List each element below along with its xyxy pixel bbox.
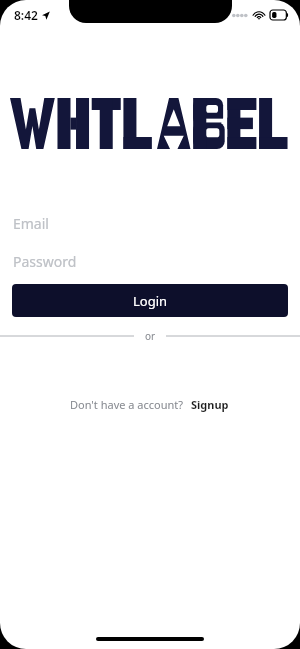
staticText: 8:42 <box>14 7 38 23</box>
other: Location active <box>41 11 50 20</box>
button[interactable]: Email <box>0 207 300 239</box>
button[interactable]: Login <box>12 284 288 317</box>
staticText: or <box>145 329 156 343</box>
staticText: Signup <box>191 397 229 412</box>
other: Wi-Fi <box>253 9 265 21</box>
button[interactable]: Signup <box>190 395 230 414</box>
staticText: Password <box>13 252 77 271</box>
button[interactable]: Password <box>0 245 300 277</box>
staticText: Email <box>13 214 49 233</box>
staticText: Login <box>133 292 168 310</box>
other: Battery <box>270 10 289 20</box>
staticText: Don't have a account? <box>70 397 184 412</box>
other: WHTLABEL logo <box>10 98 290 149</box>
